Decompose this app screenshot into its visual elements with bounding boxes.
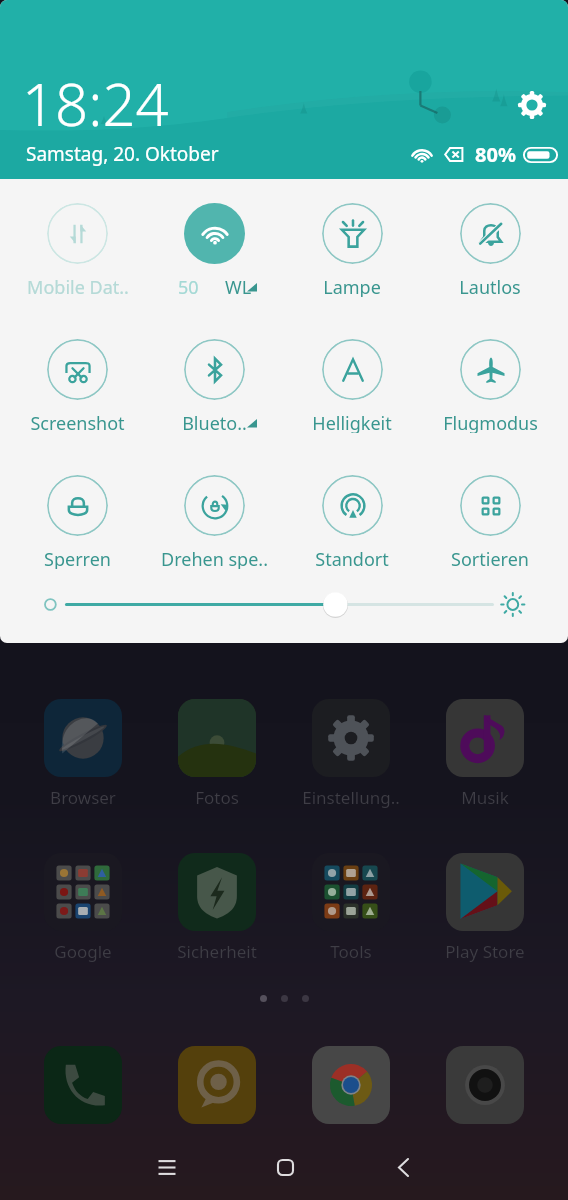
- staticText: Play Store: [445, 940, 525, 963]
- button[interactable]: Messages: [178, 1046, 256, 1124]
- button[interactable]: Sortieren: [421, 475, 559, 569]
- staticText: WL: [225, 275, 252, 297]
- button[interactable]: Lampe: [283, 203, 421, 297]
- staticText: Musik: [461, 786, 509, 809]
- button[interactable]: Blueto..: [146, 339, 283, 433]
- staticText: Flugmodus: [443, 411, 538, 433]
- button[interactable]: Einstellung..: [284, 699, 418, 809]
- button[interactable]: Chrome: [312, 1046, 390, 1124]
- button[interactable]: Screenshot: [9, 339, 146, 433]
- button[interactable]: Musik: [418, 699, 552, 809]
- staticText: Sortieren: [451, 547, 529, 569]
- staticText: Helligkeit: [312, 411, 392, 433]
- staticText: 80%: [475, 141, 516, 168]
- staticText: Sicherheit: [177, 940, 257, 963]
- button[interactable]: Sperren: [9, 475, 146, 569]
- staticText: Google: [54, 940, 112, 963]
- staticText: 50: [178, 275, 199, 297]
- button[interactable]: Settings: [509, 82, 554, 127]
- button[interactable]: Lautlos: [421, 203, 559, 297]
- button[interactable]: Tools: [284, 853, 418, 963]
- button[interactable]: Play Store: [418, 853, 552, 963]
- button[interactable]: Back: [372, 1134, 434, 1200]
- staticText: Tools: [330, 940, 372, 963]
- button[interactable]: Google: [16, 853, 150, 963]
- button[interactable]: Phone: [44, 1046, 122, 1124]
- button[interactable]: Mobile Dat..: [9, 203, 146, 297]
- staticText: Samstag, 20. Oktober: [26, 141, 219, 167]
- staticText: Lautlos: [459, 275, 521, 297]
- staticText: Fotos: [195, 786, 239, 809]
- staticText: Einstellung..: [302, 786, 400, 809]
- button[interactable]: Sicherheit: [150, 853, 284, 963]
- staticText: Browser: [50, 786, 116, 809]
- button[interactable]: [0, 590, 568, 620]
- button[interactable]: Helligkeit: [283, 339, 421, 433]
- staticText: Lampe: [323, 275, 381, 297]
- staticText: Screenshot: [30, 411, 125, 433]
- button[interactable]: Browser: [16, 699, 150, 809]
- button[interactable]: Flugmodus: [421, 339, 559, 433]
- staticText: Blueto..: [182, 411, 247, 433]
- button[interactable]: Fotos: [150, 699, 284, 809]
- staticText: Drehen spe..: [161, 547, 268, 569]
- button[interactable]: Recent apps: [136, 1134, 198, 1200]
- staticText: Sperren: [44, 547, 111, 569]
- staticText: Standort: [315, 547, 389, 569]
- button[interactable]: Standort: [283, 475, 421, 569]
- staticText: Mobile Dat..: [27, 275, 129, 297]
- staticText: 18:24: [22, 64, 169, 143]
- button[interactable]: Camera: [446, 1046, 524, 1124]
- button[interactable]: Drehen spe..: [146, 475, 283, 569]
- button[interactable]: 50: [146, 203, 283, 297]
- button[interactable]: Home: [254, 1134, 316, 1200]
